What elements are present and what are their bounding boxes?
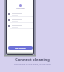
- button[interactable]: Get started: [8, 46, 33, 50]
- staticText: Welcome: [16, 7, 25, 10]
- button[interactable]: [7, 18, 33, 24]
- staticText: Connect cleaning: [15, 57, 50, 62]
- staticText: Everything in one place, all the time: [14, 63, 51, 66]
- staticText: Get started: [15, 47, 26, 50]
- button[interactable]: [7, 12, 33, 18]
- button[interactable]: [7, 24, 33, 30]
